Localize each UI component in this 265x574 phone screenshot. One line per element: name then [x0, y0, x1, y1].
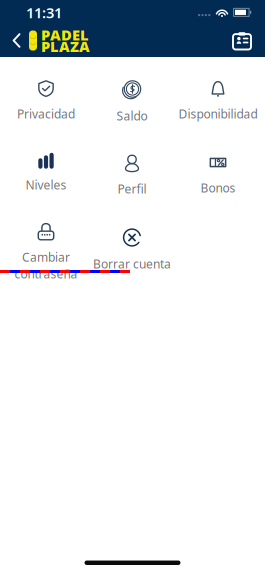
button[interactable]: Bonos: [176, 136, 260, 210]
button[interactable]: Disponibilidad: [176, 62, 260, 136]
button[interactable]: Privacidad: [4, 62, 88, 136]
staticText: PLAZA: [41, 36, 90, 56]
staticText: Niveles: [25, 177, 66, 193]
staticText: Borrar cuenta: [93, 256, 171, 272]
staticText: 11:31: [26, 3, 62, 22]
staticText: Disponibilidad: [178, 106, 257, 122]
staticText: Cambiar: [22, 249, 70, 265]
staticText: Saldo: [116, 108, 147, 124]
staticText: contraseña: [14, 266, 77, 282]
button[interactable]: Perfil: [90, 136, 174, 210]
staticText: Perfil: [117, 181, 146, 197]
staticText: Privacidad: [17, 106, 75, 122]
button[interactable]: Saldo: [90, 62, 174, 136]
button[interactable]: Cambiar: [4, 210, 88, 284]
button[interactable]: Borrar cuenta: [90, 210, 174, 284]
staticText: PADEL: [41, 25, 89, 44]
button[interactable]: Back: [5, 25, 28, 56]
staticText: Bonos: [200, 180, 235, 196]
button[interactable]: Member card: [228, 26, 256, 54]
button[interactable]: Niveles: [4, 136, 88, 210]
